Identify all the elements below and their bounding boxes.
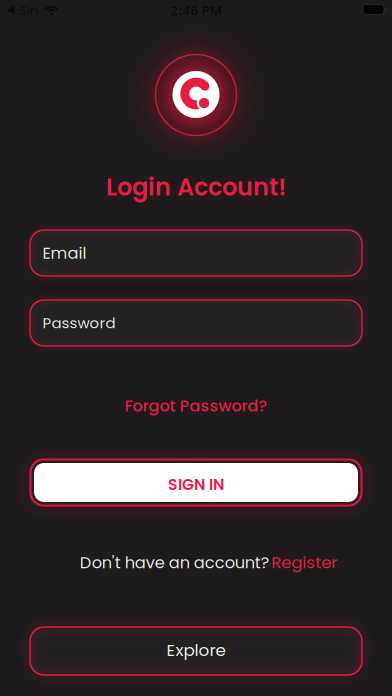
button[interactable]: Password [30,300,362,346]
staticText: Login Account! [106,170,286,204]
button[interactable]: Explore [30,627,362,675]
staticText: SIGN IN [168,474,224,495]
button[interactable]: Email [30,230,362,276]
staticText: Don't have an account? [80,551,270,574]
staticText: 2:46 PM [170,1,221,19]
button[interactable]: Register [271,551,337,574]
staticText: Password [42,312,115,333]
staticText: Explore [166,638,225,662]
staticText: Siri [19,1,38,19]
button[interactable]: SIGN IN [29,458,362,506]
staticText: Forgot Password? [124,395,267,417]
staticText: Register [271,551,337,574]
button[interactable]: Forgot Password? [124,395,267,417]
staticText: Email [42,242,86,264]
